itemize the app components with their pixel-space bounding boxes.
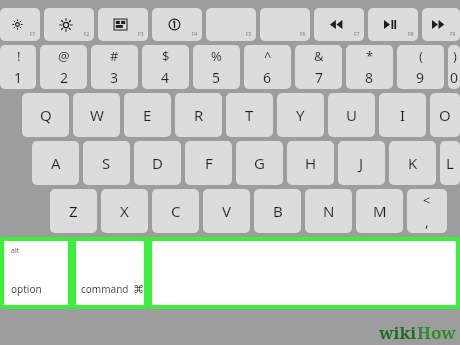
staticText: option bbox=[11, 282, 42, 296]
staticText: , bbox=[425, 212, 429, 231]
staticText: < bbox=[423, 191, 431, 209]
button[interactable]: F1 bbox=[0, 8, 40, 41]
button[interactable]: F6 bbox=[260, 8, 310, 41]
button[interactable]: F bbox=[185, 141, 232, 185]
staticText: I bbox=[400, 105, 406, 125]
staticText: F8 bbox=[408, 31, 414, 38]
button[interactable]: Y bbox=[277, 93, 324, 137]
staticText: F9 bbox=[450, 31, 456, 38]
button[interactable]: O bbox=[430, 93, 460, 137]
staticText: ! bbox=[17, 47, 21, 65]
staticText: 2 bbox=[60, 68, 69, 87]
button[interactable]: F2 bbox=[44, 8, 94, 41]
staticText: $ bbox=[162, 47, 170, 65]
button[interactable]: ) 0 bbox=[448, 45, 460, 89]
button[interactable]: option alt bbox=[4, 241, 68, 305]
staticText: F2 bbox=[84, 31, 90, 38]
staticText: Q bbox=[40, 105, 52, 125]
staticText: N bbox=[323, 201, 335, 221]
button[interactable]: M bbox=[356, 189, 403, 233]
button[interactable]: & 7 bbox=[295, 45, 342, 89]
staticText: K bbox=[408, 153, 418, 173]
staticText: wiki bbox=[379, 321, 417, 344]
button[interactable]: F9 bbox=[422, 8, 460, 41]
button[interactable]: N bbox=[305, 189, 352, 233]
button[interactable]: ! 1 bbox=[0, 45, 36, 89]
button[interactable]: A bbox=[32, 141, 79, 185]
button[interactable]: V bbox=[203, 189, 250, 233]
button[interactable]: F7 bbox=[314, 8, 364, 41]
staticText: C bbox=[171, 201, 181, 221]
staticText: F6 bbox=[300, 31, 306, 38]
button[interactable]: B bbox=[254, 189, 301, 233]
button[interactable]: K bbox=[389, 141, 436, 185]
button[interactable]: @ 2 bbox=[40, 45, 87, 89]
button[interactable]: ^ 6 bbox=[244, 45, 291, 89]
button[interactable]: Z bbox=[50, 189, 97, 233]
button[interactable]: S bbox=[83, 141, 130, 185]
staticText: X bbox=[120, 201, 129, 221]
button[interactable]: X bbox=[101, 189, 148, 233]
staticText: # bbox=[110, 47, 119, 65]
staticText: 5 bbox=[212, 68, 221, 87]
staticText: 1 bbox=[14, 68, 23, 87]
staticText: How bbox=[417, 321, 456, 344]
button[interactable]: $ 4 bbox=[142, 45, 189, 89]
staticText: U bbox=[346, 105, 357, 125]
staticText: W bbox=[90, 105, 104, 125]
staticText: V bbox=[222, 201, 232, 221]
staticText: ) bbox=[453, 47, 457, 65]
staticText: D bbox=[152, 153, 163, 173]
button[interactable]: ( 9 bbox=[397, 45, 444, 89]
staticText: T bbox=[245, 105, 254, 125]
button[interactable]: T bbox=[226, 93, 273, 137]
button[interactable]: * 8 bbox=[346, 45, 393, 89]
button[interactable]: G bbox=[236, 141, 283, 185]
staticText: 9 bbox=[416, 68, 425, 87]
staticText: G bbox=[254, 153, 265, 173]
staticText: Y bbox=[296, 105, 305, 125]
button[interactable]: F5 bbox=[206, 8, 256, 41]
button[interactable]: J bbox=[338, 141, 385, 185]
staticText: ( bbox=[419, 47, 423, 65]
button[interactable]: C bbox=[152, 189, 199, 233]
staticText: O bbox=[439, 105, 451, 125]
button[interactable]: E bbox=[124, 93, 171, 137]
staticText: * bbox=[366, 47, 374, 65]
button[interactable]: F4 bbox=[152, 8, 202, 41]
button[interactable]: D bbox=[134, 141, 181, 185]
button[interactable]: U bbox=[328, 93, 375, 137]
staticText: & bbox=[314, 47, 324, 65]
button[interactable]: L bbox=[440, 141, 460, 185]
button[interactable]: F3 bbox=[98, 8, 148, 41]
staticText: F1 bbox=[30, 31, 36, 38]
button[interactable]: # 3 bbox=[91, 45, 138, 89]
staticText: % bbox=[211, 47, 222, 65]
staticText: F7 bbox=[354, 31, 360, 38]
staticText: F5 bbox=[246, 31, 252, 38]
button[interactable]: % 5 bbox=[193, 45, 240, 89]
staticText: F bbox=[205, 153, 213, 173]
staticText: E bbox=[143, 105, 152, 125]
staticText: alt bbox=[11, 246, 20, 256]
button[interactable]: I bbox=[379, 93, 426, 137]
staticText: F4 bbox=[192, 31, 198, 38]
staticText: 6 bbox=[263, 68, 272, 87]
staticText: R bbox=[194, 105, 204, 125]
button[interactable]: Q bbox=[22, 93, 69, 137]
button[interactable]: W bbox=[73, 93, 120, 137]
staticText: 7 bbox=[315, 68, 324, 87]
button[interactable]: H bbox=[287, 141, 334, 185]
staticText: A bbox=[51, 153, 61, 173]
button[interactable]: < , bbox=[407, 189, 447, 233]
staticText: 3 bbox=[110, 68, 119, 87]
staticText: 4 bbox=[161, 68, 170, 87]
button[interactable]: F8 bbox=[368, 8, 418, 41]
staticText: F3 bbox=[138, 31, 144, 38]
staticText: ⌘ bbox=[133, 283, 144, 296]
staticText: Z bbox=[69, 201, 78, 221]
staticText: 8 bbox=[365, 68, 374, 87]
button[interactable]: command bbox=[76, 241, 144, 305]
button[interactable]: R bbox=[175, 93, 222, 137]
